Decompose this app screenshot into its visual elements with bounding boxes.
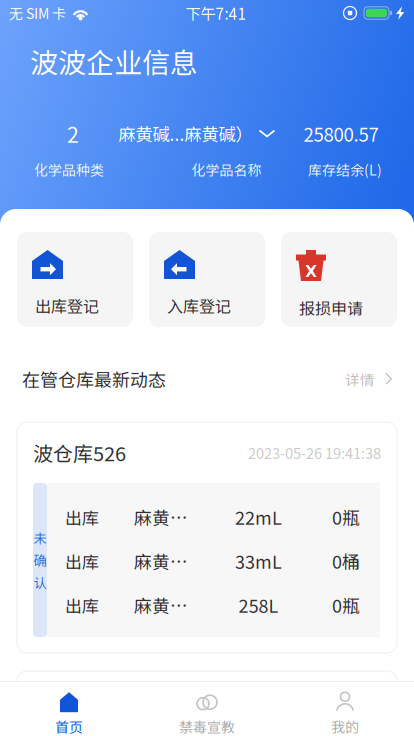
staticText: 出库	[65, 505, 99, 529]
staticText: 出库登记	[35, 294, 99, 317]
staticText: 在管仓库最新动态	[22, 366, 166, 392]
staticText: 确	[33, 550, 46, 570]
staticText: 25800.57	[303, 120, 378, 147]
staticText: 2	[67, 118, 79, 149]
staticText: 认	[33, 573, 46, 592]
staticText: 22mL	[235, 504, 282, 530]
staticText: 麻黄…	[134, 592, 188, 618]
staticText: 禁毒宣教	[179, 716, 235, 736]
staticText: 入库登记	[167, 294, 231, 317]
staticText: 报损申请	[299, 296, 363, 319]
staticText: 麻黄…	[134, 548, 188, 574]
button[interactable]: 报损申请	[281, 232, 397, 327]
staticText: 波仓库526	[33, 438, 126, 467]
staticText: 化学品种类	[34, 159, 104, 180]
button[interactable]: 入库登记	[149, 232, 265, 327]
staticText: 下午7:41	[185, 2, 246, 24]
staticText: 出库	[65, 593, 99, 617]
staticText: 波波企业信息	[30, 41, 198, 81]
staticText: 0瓶	[332, 504, 360, 530]
button[interactable]: 出库登记	[17, 232, 133, 327]
staticText: 麻黄…	[134, 504, 188, 530]
staticText: 0瓶	[332, 592, 360, 618]
staticText: 详情	[345, 368, 375, 390]
button[interactable]: 禁毒宣教	[138, 682, 276, 736]
staticText: 2023-05-26 19:41:38	[248, 442, 381, 463]
button[interactable]: 首页	[0, 682, 138, 736]
button[interactable]: 我的	[276, 682, 414, 736]
staticText: 我的	[331, 716, 359, 736]
staticText: 库存结余(L)	[308, 159, 382, 180]
staticText: 首页	[55, 716, 83, 736]
staticText: 出库	[65, 549, 99, 573]
staticText: 无 SIM 卡	[9, 3, 66, 23]
staticText: 258L	[238, 592, 278, 618]
staticText: 化学品名称	[191, 159, 261, 180]
staticText: 0桶	[332, 548, 360, 574]
staticText: 未	[33, 528, 46, 547]
staticText: 33mL	[235, 548, 282, 574]
staticText: 麻黄碱...麻黄碱）	[118, 121, 252, 146]
button[interactable]: 详情	[345, 368, 393, 390]
